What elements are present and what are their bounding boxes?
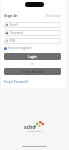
- button[interactable]: Forgot Password?: [4, 80, 29, 84]
- staticText: Keep me logged in: [8, 46, 32, 50]
- staticText: Login: [28, 55, 37, 59]
- button[interactable]: PIN: [4, 38, 61, 44]
- button[interactable]: Password: [4, 30, 61, 36]
- button[interactable]: Need help?: [46, 14, 61, 18]
- staticText: Create Account: [21, 70, 45, 74]
- staticText: or: [31, 62, 34, 66]
- button[interactable]: Create Account: [4, 68, 61, 75]
- staticText: Password: [10, 31, 24, 35]
- staticText: learning platform: [28, 130, 43, 132]
- button[interactable]: Keep me logged in: [4, 46, 32, 50]
- staticText: Email: [10, 23, 18, 27]
- button[interactable]: Email: [4, 22, 61, 28]
- staticText: scho: [24, 124, 36, 131]
- staticText: Sign In: [4, 13, 18, 18]
- staticText: PIN: [10, 39, 15, 43]
- button[interactable]: Login: [4, 53, 61, 60]
